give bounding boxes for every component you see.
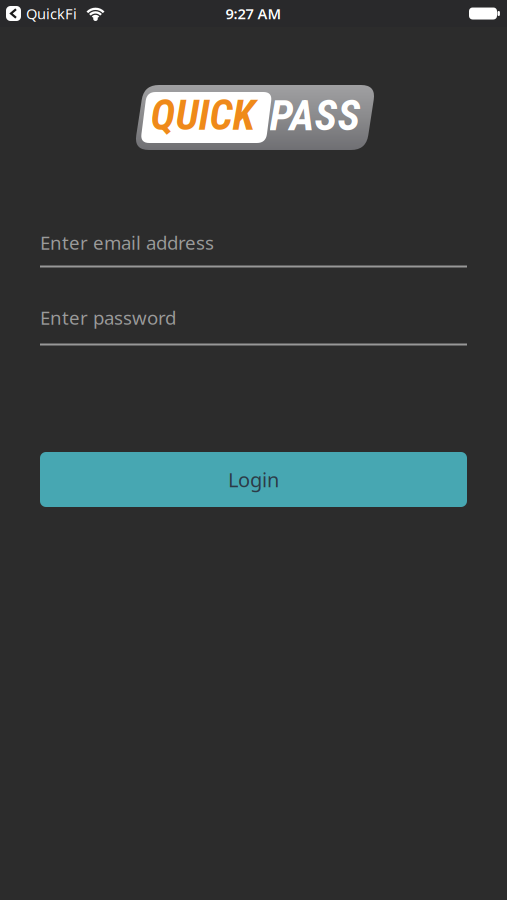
button[interactable]: Login xyxy=(40,452,467,507)
staticText: Login xyxy=(228,466,279,493)
staticText: PASS xyxy=(269,90,360,141)
staticText: Enter password xyxy=(40,305,176,330)
button[interactable]: Enter email address xyxy=(40,225,467,275)
staticText: 9:27 AM xyxy=(225,4,281,23)
button[interactable]: Back to QuickFi xyxy=(6,4,77,23)
button[interactable]: Enter password xyxy=(40,303,467,353)
staticText: QuickFi xyxy=(26,4,77,23)
staticText: QUICK xyxy=(150,91,255,140)
staticText: Enter email address xyxy=(40,230,214,255)
